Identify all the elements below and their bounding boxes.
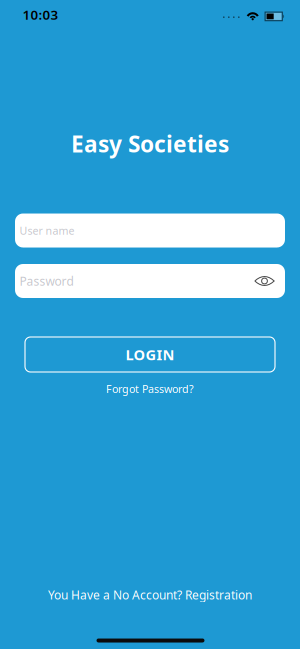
staticText: Forgot Password? [106, 382, 194, 396]
staticText: Easy Societies [71, 129, 229, 159]
button[interactable]: You Have a No Account? Registration [48, 587, 252, 603]
button[interactable]: Forgot Password? [106, 382, 194, 396]
staticText: Password [19, 273, 73, 289]
button[interactable]: Password [15, 264, 285, 298]
staticText: User name [19, 223, 74, 238]
staticText: 10:03 [22, 6, 58, 23]
button[interactable]: LOGIN [25, 337, 275, 372]
staticText: LOGIN [125, 345, 174, 364]
button[interactable]: User name [15, 213, 285, 247]
staticText: You Have a No Account? Registration [48, 587, 252, 603]
